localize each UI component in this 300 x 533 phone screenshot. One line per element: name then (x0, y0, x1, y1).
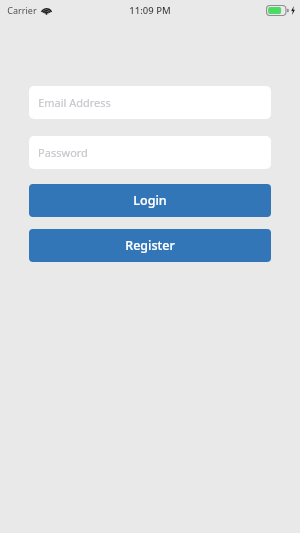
staticText: Register (125, 237, 175, 254)
button[interactable]: Login (29, 184, 271, 217)
button[interactable]: Password (29, 136, 271, 169)
button[interactable]: Register (29, 229, 271, 262)
button[interactable]: Email Address (29, 86, 271, 119)
staticText: 11:09 PM (129, 4, 171, 17)
staticText: Password (38, 145, 88, 160)
staticText: Email Address (38, 95, 111, 110)
staticText: Login (133, 192, 167, 209)
staticText: Carrier (7, 4, 37, 16)
